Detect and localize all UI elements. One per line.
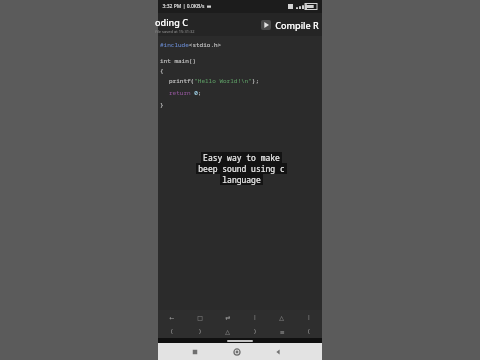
staticText: 3:32 PM | 0.0KB/s <box>162 3 205 10</box>
staticText: } <box>160 101 164 109</box>
staticText: #include<stdio.h> <box>160 41 222 49</box>
staticText: { <box>160 67 164 75</box>
button[interactable]: ) <box>241 326 268 336</box>
button[interactable]: ⇄ <box>214 312 241 322</box>
staticText: file saved at 15:31:32 <box>155 29 195 34</box>
staticText: ( <box>171 327 173 335</box>
staticText: ) <box>254 327 256 335</box>
button[interactable]: Home <box>216 343 257 360</box>
staticText: ) <box>199 327 201 335</box>
staticText: printf("Hello World!\n"); <box>169 77 260 85</box>
staticText: Easy way to make <box>203 152 280 163</box>
staticText: Compile R <box>275 19 319 31</box>
button[interactable]: △ <box>268 312 295 322</box>
staticText: | <box>307 313 311 321</box>
staticText: □ <box>197 314 203 321</box>
other: Compile and Run <box>261 20 271 30</box>
button[interactable]: ( <box>295 326 322 336</box>
staticText: int main() <box>160 57 197 65</box>
button[interactable]: | <box>295 312 322 322</box>
button[interactable]: Recent apps <box>174 343 216 360</box>
staticText: ⇄ <box>225 314 231 321</box>
staticText: ≡ <box>279 328 285 335</box>
staticText: △ <box>279 314 284 321</box>
button[interactable]: Compile and Run <box>258 17 322 33</box>
button[interactable]: △ <box>214 326 241 336</box>
button[interactable]: ← <box>158 312 186 322</box>
staticText: oding C <box>155 16 188 28</box>
button[interactable]: □ <box>186 312 214 322</box>
button[interactable]: ) <box>186 326 214 336</box>
button[interactable]: ( <box>158 326 186 336</box>
staticText: △ <box>225 328 230 335</box>
button[interactable]: Back <box>257 343 298 360</box>
staticText: ( <box>308 327 310 335</box>
staticText: | <box>253 313 257 321</box>
staticText: beep sound using c <box>198 163 285 174</box>
button[interactable]: | <box>241 312 268 322</box>
button[interactable]: ≡ <box>268 326 295 336</box>
staticText: return 0; <box>169 89 202 97</box>
staticText: ← <box>169 314 175 321</box>
staticText: language <box>222 174 261 185</box>
